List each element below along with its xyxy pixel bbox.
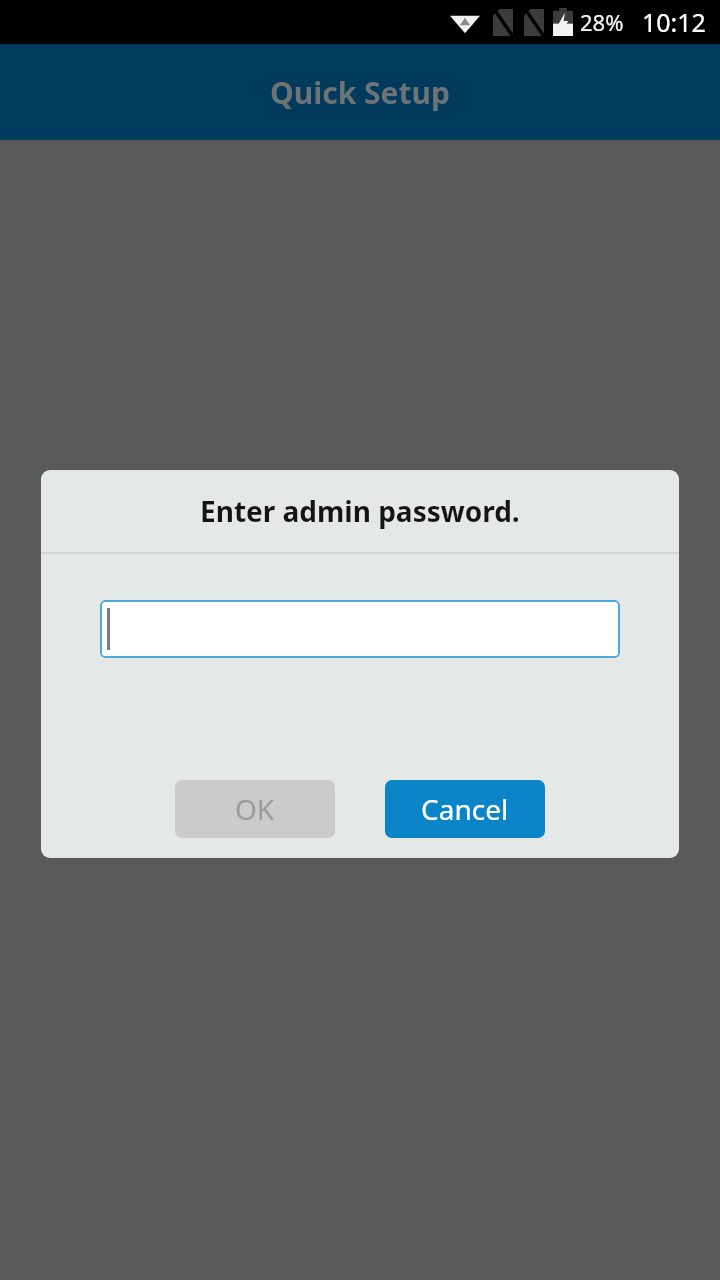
staticText: Quick Setup (270, 72, 450, 113)
button[interactable]: Cancel (385, 780, 545, 838)
button[interactable]: Password input field (100, 600, 620, 658)
other: No SIM card (493, 9, 513, 36)
staticText: Enter admin password. (200, 492, 520, 530)
other: No SIM card (524, 9, 544, 36)
other: Wi-Fi signal (450, 10, 480, 34)
staticText: Cancel (421, 790, 509, 828)
staticText: OK (235, 790, 275, 828)
staticText: 10:12 (642, 5, 706, 39)
other: Battery charging 28 percent (553, 8, 573, 36)
staticText: 28% (580, 7, 624, 37)
button[interactable]: OK (175, 780, 335, 838)
